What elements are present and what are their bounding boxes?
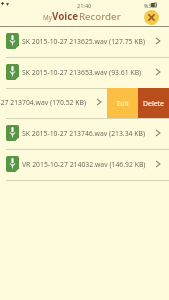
staticText: SK 2015-10-27 213653.wav (93.61 KB) [22,68,142,77]
button[interactable]: SK 2015-10-27 213704.wav (170.52 KB) [0,88,169,119]
staticText: 21:40 [77,2,92,10]
button[interactable]: Edit [107,88,138,119]
button[interactable]: Close [144,10,159,25]
staticText: Edit [117,99,129,108]
button[interactable]: VR 2015-10-27 214032.wav (146.92 KB) [0,150,169,181]
button[interactable]: Delete [138,88,169,119]
staticText: My [43,13,52,22]
staticText: Voice [52,10,79,23]
staticText: VR 2015-10-27 214032.wav (146.92 KB) [22,160,146,169]
staticText: SK 2015-10-27 213704.wav (170.52 KB) [0,98,87,107]
button[interactable]: SK 2015-10-27 213746.wav (213.34 KB) [0,119,169,150]
staticText: Recorder [79,10,121,23]
staticText: SK 2015-10-27 213625.wav (127.75 KB) [22,37,146,46]
button[interactable]: SK 2015-10-27 213625.wav (127.75 KB) [0,27,169,58]
staticText: %38 [144,2,155,9]
staticText: SK 2015-10-27 213746.wav (213.34 KB) [22,129,146,138]
button[interactable]: SK 2015-10-27 213653.wav (93.61 KB) [0,58,169,89]
staticText: Delete [143,99,164,108]
